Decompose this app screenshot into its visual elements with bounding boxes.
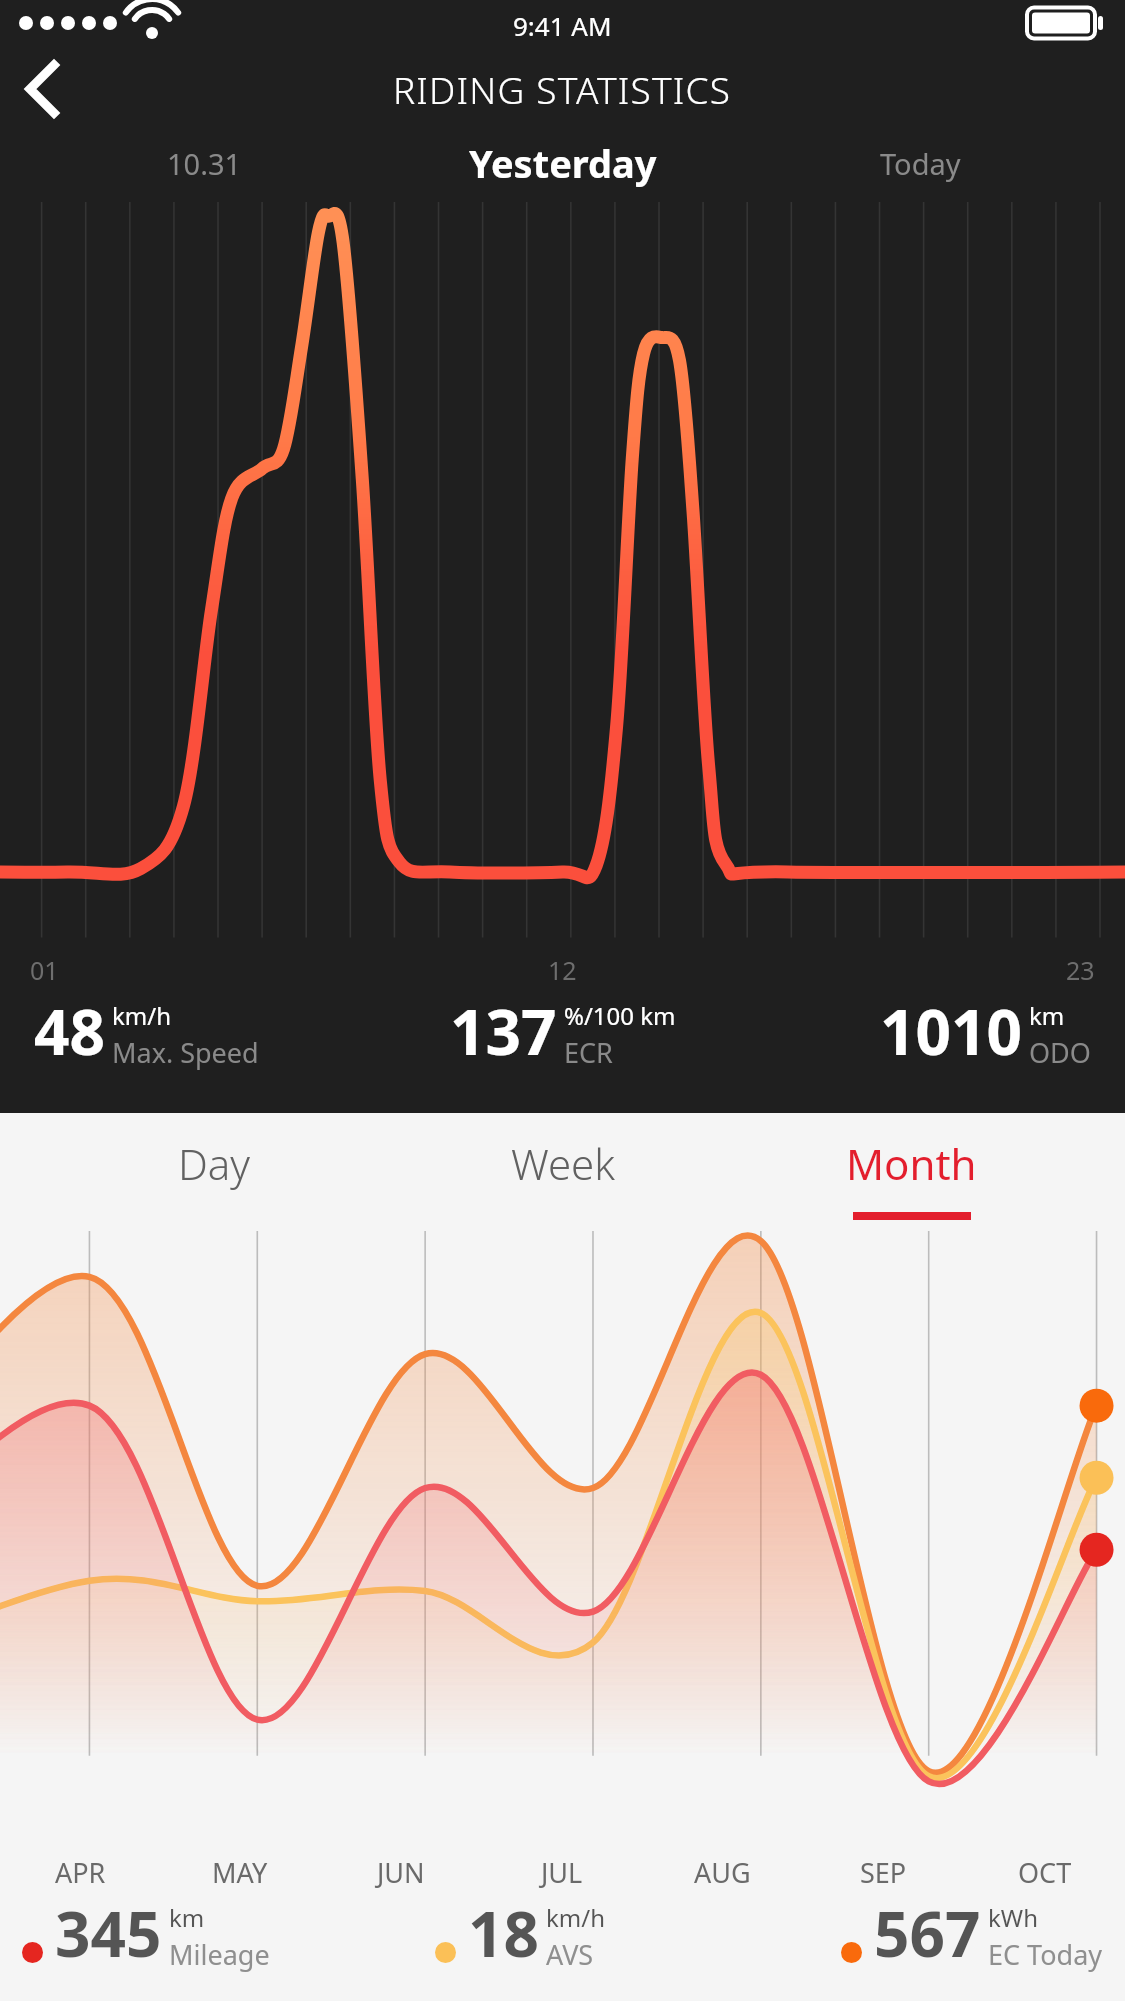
staticText: SEP [860,1854,907,1891]
staticText: Mileage [169,1936,270,1973]
staticText: %/100 km [564,999,676,1032]
staticText: km [169,1901,205,1934]
staticText: Week [511,1135,616,1192]
staticText: AUG [694,1854,751,1891]
staticText: ODO [1029,1034,1091,1071]
staticText: 137 [450,989,557,1073]
staticText: JUL [541,1854,583,1891]
staticText: km/h [546,1901,606,1934]
button[interactable]: 10.31 [34,128,375,198]
staticText: APR [55,1854,106,1891]
staticText: 9:41 AM [513,8,612,43]
staticText: 18 [468,1891,539,1975]
staticText: JUN [377,1854,425,1891]
staticText: 345 [55,1891,162,1975]
staticText: EC Today [988,1936,1103,1973]
button[interactable]: Month [737,1135,1085,1231]
staticText: AVS [546,1936,594,1973]
staticText: Today [880,144,961,183]
button[interactable]: Day [40,1135,389,1231]
button[interactable]: Back [14,61,70,117]
staticText: 10.31 [167,144,242,183]
staticText: kWh [988,1901,1038,1934]
staticText: Max. Speed [112,1034,259,1071]
staticText: 567 [874,1891,981,1975]
staticText: OCT [1018,1854,1072,1891]
staticText: ECR [564,1034,613,1071]
staticText: RIDING STATISTICS [393,64,732,114]
staticText: Month [846,1135,977,1192]
button[interactable]: Week [389,1135,737,1231]
button[interactable]: Today [750,128,1091,198]
staticText: 23 [1066,953,1095,987]
staticText: Yesterday [469,137,657,189]
staticText: km [1029,999,1065,1032]
staticText: MAY [212,1854,268,1891]
staticText: 48 [34,989,105,1073]
staticText: 12 [548,953,577,987]
button[interactable]: Yesterday [375,128,750,198]
staticText: 1010 [880,989,1022,1073]
staticText: 01 [30,953,59,987]
staticText: Day [178,1135,251,1192]
staticText: km/h [112,999,172,1032]
